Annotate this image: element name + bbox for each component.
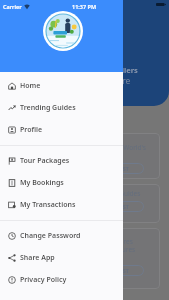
button[interactable]: Top Rated Guides xyxy=(9,184,160,223)
staticText: Travel Explores and Adventures for you? xyxy=(87,237,136,262)
staticText: Let's Explore xyxy=(80,75,131,87)
button[interactable]: Trending Guides xyxy=(0,97,123,119)
staticText: Explore the World's Best Places xyxy=(87,143,146,160)
button[interactable]: VIEW LIST xyxy=(87,265,144,276)
button[interactable]: Share App xyxy=(0,247,123,269)
staticText: My Bookings xyxy=(20,178,64,188)
button[interactable]: Profile xyxy=(0,119,123,141)
button[interactable]: Explore the World's Best Places xyxy=(9,133,160,179)
staticText: Share App xyxy=(20,253,55,263)
staticText: 11:37 PM xyxy=(72,3,97,10)
button[interactable]: My Bookings xyxy=(0,172,123,194)
button[interactable]: Change Password xyxy=(0,225,123,247)
staticText: My Transactions xyxy=(20,200,76,210)
staticText: VIEW LIST xyxy=(102,203,129,210)
button[interactable]: VIEW LIST xyxy=(87,163,144,174)
staticText: Privacy Policy xyxy=(20,275,67,285)
staticText: Profile xyxy=(20,125,43,135)
staticText: Home xyxy=(20,81,41,91)
button[interactable]: Home xyxy=(0,75,123,97)
button[interactable]: Travel Explores and Adventures for you? xyxy=(9,228,160,289)
button[interactable]: Tour Packages xyxy=(0,150,123,172)
staticText: Trending Guides xyxy=(20,103,76,113)
staticText: Carrier xyxy=(3,3,22,10)
staticText: Change Password xyxy=(20,231,81,241)
button[interactable]: My Transactions xyxy=(0,194,123,216)
staticText: Tour Packages xyxy=(20,156,70,166)
staticText: Top Rated Guides xyxy=(87,189,141,198)
staticText: VIEW LIST xyxy=(102,165,129,172)
staticText: Hello Travellers xyxy=(80,65,138,75)
button[interactable]: VIEW LIST xyxy=(87,201,144,212)
button[interactable]: Privacy Policy xyxy=(0,269,123,291)
staticText: VIEW LIST xyxy=(102,267,129,274)
